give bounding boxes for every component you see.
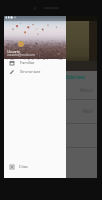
staticText: Sincronizar — [20, 69, 41, 74]
button[interactable]: Abril — [4, 100, 97, 124]
button[interactable]: Familiar — [4, 58, 66, 67]
staticText: Abril — [82, 108, 93, 115]
staticText: Mayo — [80, 87, 93, 94]
staticText: Usuario — [7, 49, 20, 54]
staticText: Citas — [19, 164, 28, 169]
staticText: usuario@mail.com — [7, 53, 35, 57]
button[interactable] — [4, 124, 97, 148]
staticText: Familiar — [20, 60, 35, 65]
other: Citas — [10, 165, 14, 169]
button[interactable]: Citas — [4, 162, 66, 171]
button[interactable]: Mayo — [4, 82, 97, 100]
button[interactable]: Sincronizar — [4, 67, 66, 76]
staticText: Este mes — [66, 74, 85, 80]
